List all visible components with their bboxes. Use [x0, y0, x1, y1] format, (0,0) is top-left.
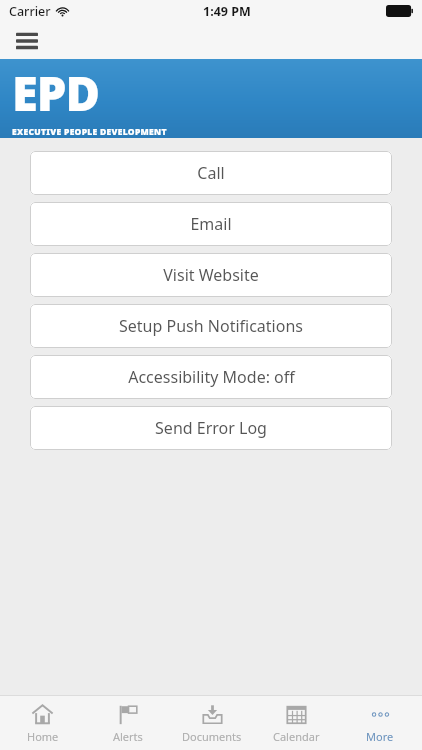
- staticText: Send Error Log: [155, 417, 267, 439]
- staticText: Alerts: [113, 729, 143, 744]
- button[interactable]: Alerts: [85, 696, 170, 750]
- button[interactable]: Call: [30, 151, 392, 195]
- button[interactable]: Calendar: [254, 696, 338, 750]
- staticText: Documents: [182, 729, 242, 744]
- staticText: Carrier: [9, 3, 51, 20]
- staticText: 1:49 PM: [203, 3, 251, 20]
- button[interactable]: Menu: [10, 24, 44, 58]
- button[interactable]: Setup Push Notifications: [30, 304, 392, 348]
- button[interactable]: More: [338, 696, 422, 750]
- button[interactable]: Email: [30, 202, 392, 246]
- button[interactable]: Send Error Log: [30, 406, 392, 450]
- staticText: Home: [27, 729, 59, 744]
- button[interactable]: Documents: [170, 696, 254, 750]
- staticText: Accessibility Mode: off: [128, 366, 295, 388]
- staticText: Email: [190, 213, 232, 235]
- staticText: Visit Website: [163, 264, 259, 286]
- button[interactable]: Accessibility Mode: off: [30, 355, 392, 399]
- staticText: Call: [197, 162, 225, 184]
- button[interactable]: Visit Website: [30, 253, 392, 297]
- staticText: EPD: [12, 61, 100, 125]
- button[interactable]: Home: [0, 696, 85, 750]
- staticText: Setup Push Notifications: [119, 315, 303, 337]
- staticText: Calendar: [273, 729, 320, 744]
- staticText: EXECUTIVE PEOPLE DEVELOPMENT: [12, 126, 167, 138]
- staticText: More: [366, 729, 394, 744]
